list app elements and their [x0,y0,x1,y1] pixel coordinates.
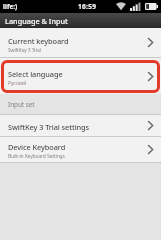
staticText: Select language [8,69,63,79]
staticText: life:) [3,2,18,11]
staticText: Built-in Keyboard Settings [8,153,65,160]
button[interactable]: Select language [1,60,160,93]
staticText: Current keyboard [8,36,69,46]
button[interactable]: SwiftKey 3 Trial settings [0,115,161,136]
staticText: Русский [8,80,27,87]
staticText: Language & Input [5,16,68,26]
staticText: SwiftKey 3 Trial [8,47,41,54]
staticText: SwiftKey 3 Trial settings [8,122,90,132]
staticText: Input set [8,100,35,109]
button[interactable]: Device Keyboard [0,137,161,162]
staticText: 16:59 [78,2,97,11]
button[interactable]: Current keyboard [0,28,161,57]
staticText: Device Keyboard [8,142,66,152]
